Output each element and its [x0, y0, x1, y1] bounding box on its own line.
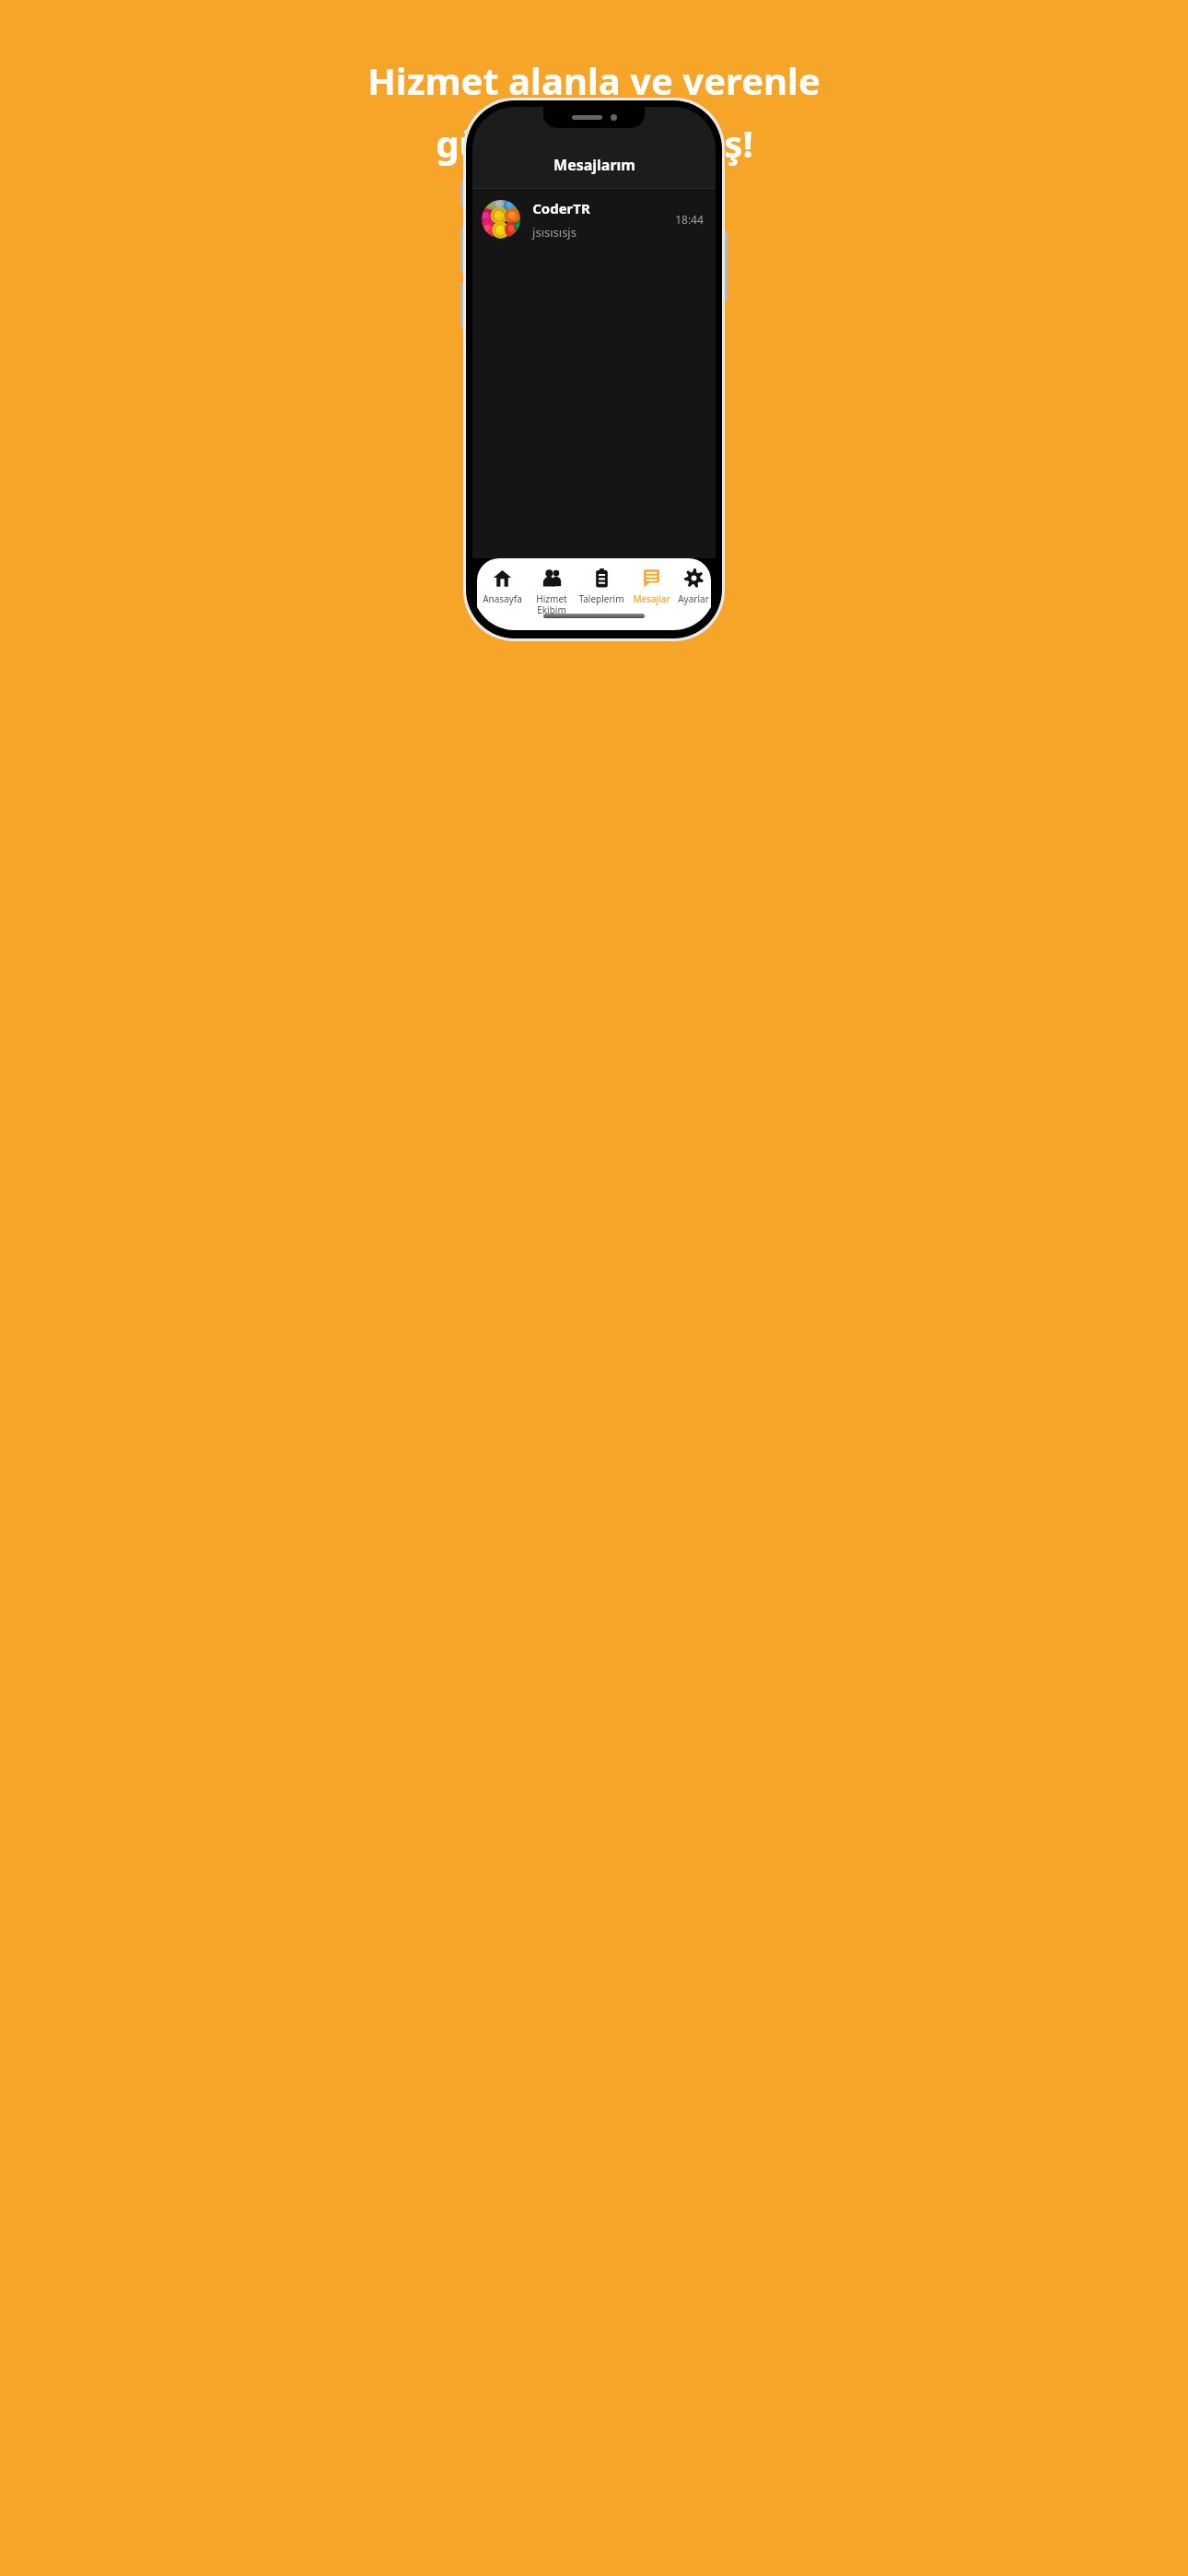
button[interactable]: Mesajlar: [626, 567, 676, 607]
staticText: Hizmet alanla ve verenle: [367, 55, 821, 105]
staticText: Mesajlarım: [553, 155, 635, 175]
button[interactable]: Taleplerim: [577, 567, 626, 607]
staticText: CoderTR: [532, 199, 590, 217]
button[interactable]: CoderTR: [472, 189, 716, 250]
staticText: Hizmet Ekibim: [536, 592, 567, 616]
staticText: güvenli mesajlaş!: [436, 118, 753, 168]
staticText: Taleplerim: [578, 592, 624, 605]
staticText: Mesajlar: [633, 592, 670, 605]
staticText: 18:44: [675, 212, 704, 227]
button[interactable]: Anasayfa: [477, 567, 527, 607]
staticText: Anasayfa: [483, 592, 522, 605]
button[interactable]: Hizmet Ekibim: [527, 567, 577, 618]
button[interactable]: Ayarlar: [676, 567, 711, 607]
staticText: jsısısısjs: [532, 224, 577, 240]
staticText: Ayarlar: [678, 592, 709, 605]
